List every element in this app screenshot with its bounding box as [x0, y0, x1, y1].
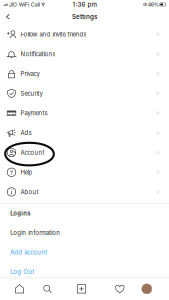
- staticText: 46%: [148, 1, 159, 8]
- button[interactable]: Notifications: [0, 44, 169, 64]
- button[interactable]: Login information: [0, 223, 169, 243]
- button[interactable]: Payments: [0, 103, 169, 123]
- button[interactable]: Privacy: [0, 64, 169, 84]
- button[interactable]: Help: [0, 162, 169, 182]
- staticText: Ads: [20, 129, 31, 136]
- staticText: Add account: [10, 249, 47, 256]
- button[interactable]: Create: [52, 278, 86, 300]
- button[interactable]: Profile: [124, 278, 152, 300]
- button[interactable]: Back: [0, 9, 16, 24]
- button[interactable]: Account: [0, 143, 169, 162]
- staticText: Log Out: [10, 268, 34, 275]
- button[interactable]: Security: [0, 84, 169, 103]
- staticText: Notifications: [20, 50, 55, 58]
- staticText: Help: [20, 169, 32, 176]
- button[interactable]: Activity: [86, 278, 124, 300]
- staticText: Follow and invite friends: [20, 31, 86, 38]
- staticText: Account: [20, 149, 44, 156]
- staticText: Privacy: [20, 70, 39, 77]
- button[interactable]: Add account: [0, 243, 169, 262]
- staticText: JIO WiFi Call: [9, 1, 40, 8]
- button[interactable]: Follow and invite friends: [0, 24, 169, 44]
- staticText: Settings: [72, 13, 97, 21]
- staticText: Payments: [20, 109, 47, 117]
- button[interactable]: About: [0, 182, 169, 202]
- staticText: 1:36 pm: [72, 1, 96, 8]
- staticText: Login information: [10, 229, 60, 237]
- staticText: Security: [20, 90, 42, 97]
- button[interactable]: Log Out: [0, 262, 169, 281]
- staticText: About: [20, 188, 38, 196]
- button[interactable]: Logins: [0, 204, 169, 223]
- button[interactable]: Ads: [0, 123, 169, 143]
- button[interactable]: Search: [24, 278, 52, 300]
- button[interactable]: Home: [0, 278, 24, 300]
- staticText: Logins: [10, 210, 30, 217]
